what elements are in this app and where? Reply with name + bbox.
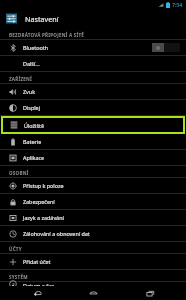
staticText: Přidat účet: [23, 258, 51, 265]
staticText: OSOBNÍ: [9, 170, 29, 176]
button[interactable]: Jazyk a zadávání: [0, 210, 186, 225]
button[interactable]: Domů: [73, 286, 113, 300]
button[interactable]: Zpět: [17, 286, 57, 300]
staticText: Aplikace: [23, 154, 45, 161]
button[interactable]: Úložiště: [1, 116, 185, 134]
staticText: Další...: [23, 60, 40, 67]
staticText: Bluetooth: [23, 44, 49, 51]
button[interactable]: Nastavení: [0, 9, 186, 28]
staticText: SYSTÉM: [9, 274, 28, 280]
staticText: Jazyk a zadávání: [23, 214, 64, 221]
staticText: Displej: [23, 104, 41, 111]
staticText: BEZDRÁTOVÁ PŘIPOJENÍ A SÍTĚ: [9, 32, 85, 38]
button[interactable]: Přidat účet: [0, 254, 186, 269]
button[interactable]: Zvuk: [0, 84, 186, 99]
staticText: Úložiště: [24, 122, 45, 129]
button[interactable]: Zabezpečení: [0, 194, 186, 209]
staticText: Přístup k poloze: [23, 182, 64, 189]
staticText: Zvuk: [23, 88, 36, 95]
staticText: Datum a čas: [23, 282, 55, 286]
staticText: ZAŘÍZENÍ: [9, 76, 32, 82]
staticText: Zabezpečení: [23, 198, 55, 205]
button[interactable]: Aplikace: [0, 150, 186, 165]
button[interactable]: Displej: [0, 100, 186, 115]
button[interactable]: Další: [0, 56, 186, 71]
button[interactable]: Baterie: [0, 134, 186, 149]
staticText: Nastavení: [25, 14, 59, 24]
staticText: 7:54: [172, 1, 183, 8]
button[interactable]: Zálohování a obnovení dat: [0, 226, 186, 241]
button[interactable]: Datum a čas: [0, 282, 186, 286]
button[interactable]: Přístup k poloze: [0, 178, 186, 193]
staticText: ÚČTY: [9, 246, 22, 252]
button[interactable]: Bluetooth: [0, 40, 186, 55]
staticText: Baterie: [23, 138, 42, 145]
button[interactable]: Poslední aplikace: [130, 286, 170, 300]
staticText: Zálohování a obnovení dat: [23, 230, 90, 237]
